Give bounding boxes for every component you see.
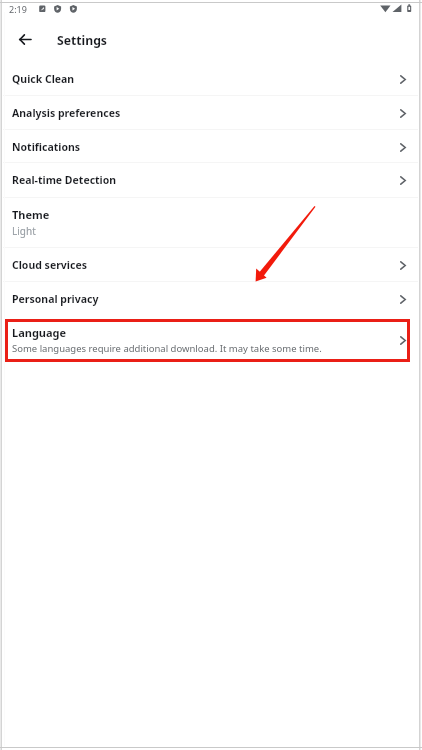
button[interactable]: Theme — [0, 198, 422, 243]
button[interactable]: Language — [5, 319, 410, 362]
button[interactable]: Back — [11, 25, 39, 53]
staticText: Real-time Detection — [12, 173, 117, 187]
staticText: Cloud services — [12, 258, 87, 272]
staticText: Personal privacy — [12, 292, 99, 306]
button[interactable]: Personal privacy — [0, 282, 422, 316]
staticText: 2:19 — [9, 3, 27, 15]
staticText: Light — [12, 224, 36, 238]
button[interactable]: Notifications — [0, 130, 422, 164]
staticText: Quick Clean — [12, 72, 75, 86]
button[interactable]: Real-time Detection — [0, 163, 422, 197]
staticText: Notifications — [12, 140, 81, 154]
staticText: Theme — [12, 207, 50, 222]
staticText: Language — [12, 325, 67, 340]
button[interactable]: Analysis preferences — [0, 96, 422, 130]
button[interactable]: Cloud services — [0, 248, 422, 282]
staticText: Analysis preferences — [12, 106, 121, 120]
staticText: Some languages require additional downlo… — [12, 342, 322, 355]
button[interactable]: Quick Clean — [0, 62, 422, 96]
staticText: Settings — [57, 32, 107, 49]
